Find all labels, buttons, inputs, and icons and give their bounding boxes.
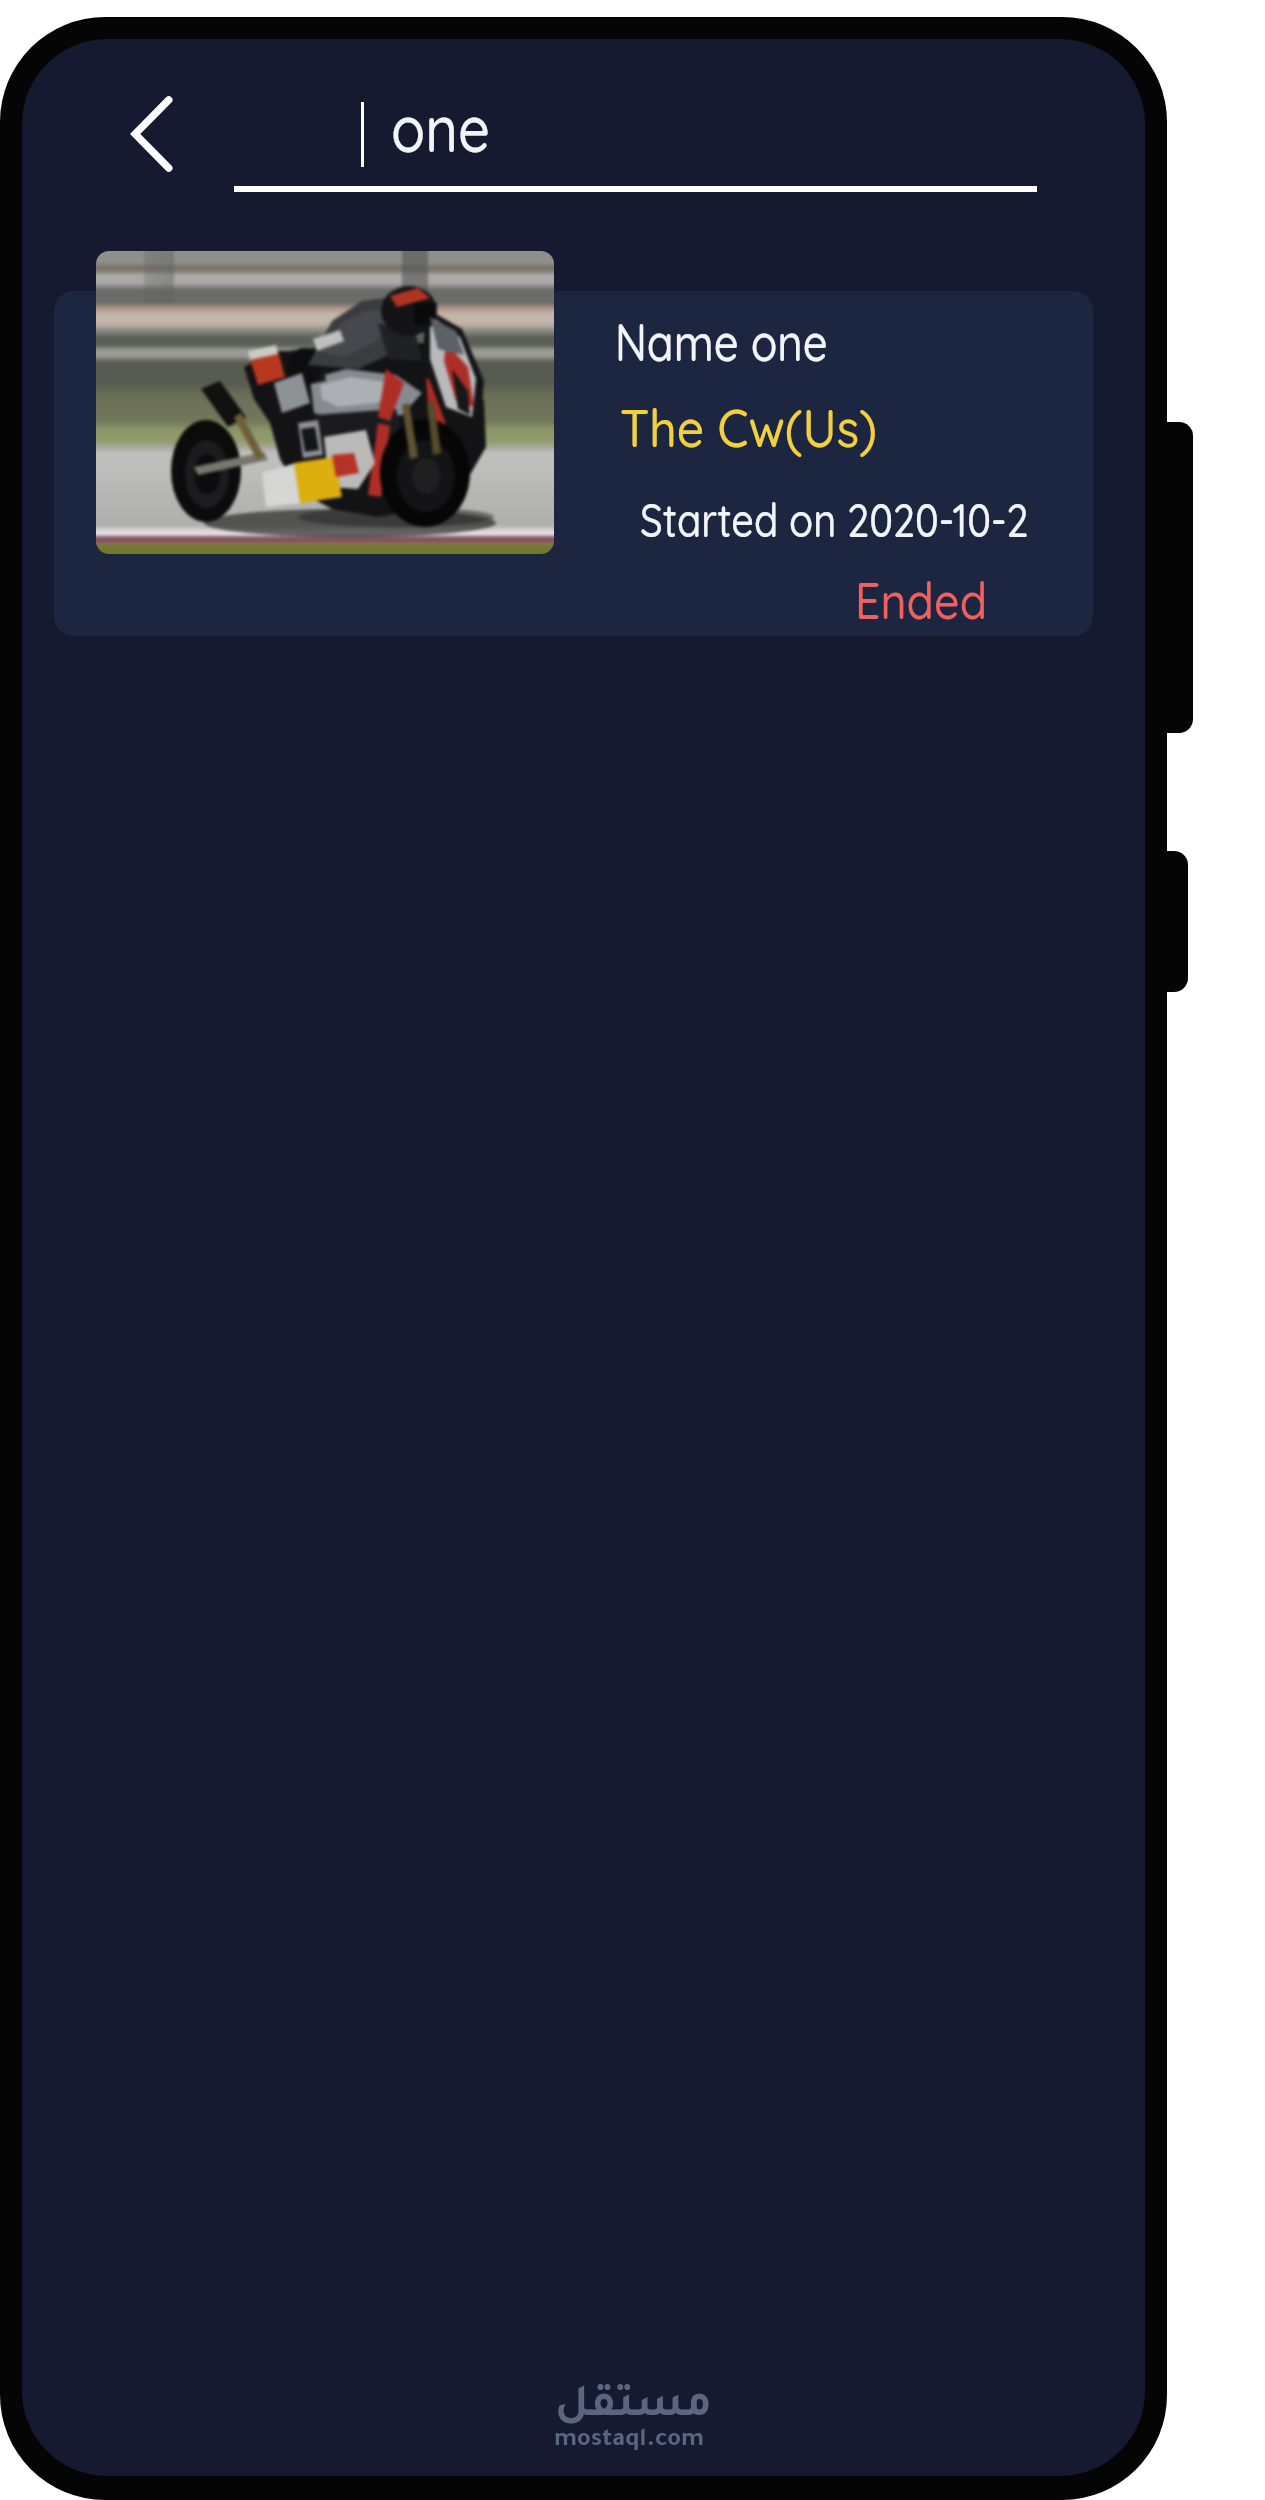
staticText: mostaql.com (554, 2428, 705, 2454)
button[interactable]: one (234, 75, 1059, 195)
staticText: The Cw(Us) (620, 395, 877, 460)
staticText: Name one (615, 307, 828, 374)
staticText: one (391, 86, 490, 168)
button[interactable]: Name one (54, 291, 1093, 636)
staticText: Started on 2020-10-2 (640, 491, 1029, 549)
staticText: مستقل (555, 2385, 713, 2431)
staticText: Ended (855, 569, 987, 632)
button[interactable]: Back (123, 72, 223, 194)
